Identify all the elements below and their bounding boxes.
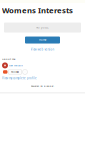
button[interactable]: More follow options [22, 69, 27, 74]
button[interactable]: View my complete profile [2, 76, 37, 80]
staticText: About me [2, 57, 15, 60]
staticText: View my complete profile [2, 76, 37, 80]
staticText: No posts. [36, 26, 49, 29]
button[interactable]: Follow [8, 69, 21, 74]
staticText: Powered by Blogger. [30, 84, 54, 87]
staticText: View web version [30, 47, 54, 51]
staticText: Follow [11, 70, 19, 74]
staticText: Womens Interests [2, 5, 73, 15]
button[interactable]: Home [25, 36, 60, 43]
button[interactable]: View web version [30, 47, 54, 51]
staticText: ravi mhalot [9, 64, 23, 67]
staticText: Home [39, 38, 46, 42]
button[interactable]: ravi mhalot [9, 64, 23, 67]
